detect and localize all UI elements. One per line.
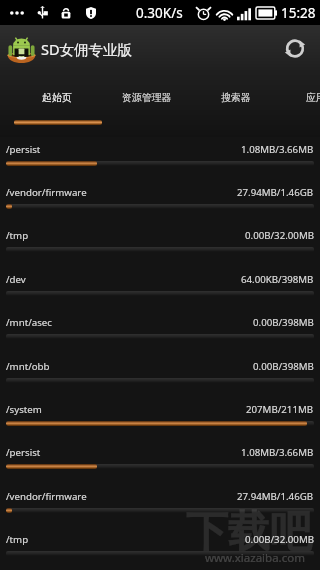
button[interactable]: /system (0, 398, 320, 441)
staticText: 0.30K/s (136, 4, 183, 22)
staticText: 0.00B/32.00MB (245, 533, 314, 546)
staticText: /vendor/firmware (6, 490, 87, 503)
staticText: SD女佣专业版 (41, 39, 133, 59)
staticText: 207MB/211MB (246, 403, 314, 416)
staticText: 15:28 (281, 4, 316, 22)
button[interactable]: /vendor/firmware (0, 485, 320, 528)
button[interactable]: /tmp (0, 528, 320, 570)
button[interactable]: /mnt/asec (0, 311, 320, 354)
button[interactable]: 应用管理 (281, 72, 320, 137)
button[interactable]: /vendor/firmware (0, 181, 320, 224)
staticText: 1.08MB/3.66MB (241, 446, 314, 459)
staticText: 0.00B/32.00MB (245, 229, 314, 242)
staticText: 应用管理 (306, 91, 320, 103)
staticText: /mnt/obb (6, 360, 50, 373)
button[interactable]: /dev (0, 268, 320, 311)
staticText: 下载吧 (186, 506, 312, 559)
button[interactable]: 搜索器 (191, 72, 281, 137)
button[interactable]: /mnt/obb (0, 355, 320, 398)
staticText: 起始页 (42, 91, 72, 103)
staticText: 搜索器 (221, 91, 251, 103)
staticText: /tmp (6, 229, 29, 242)
staticText: /system (6, 403, 42, 416)
staticText: www.xiazaiba.com (205, 550, 305, 566)
staticText: 0.00B/398MB (253, 316, 314, 329)
button[interactable]: /persist (0, 441, 320, 484)
button[interactable]: /persist (0, 138, 320, 181)
staticText: 27.94MB/1.46GB (237, 186, 314, 199)
staticText: 1.08MB/3.66MB (241, 143, 314, 156)
button[interactable]: Refresh (271, 25, 318, 72)
staticText: /tmp (6, 533, 29, 546)
button[interactable]: /tmp (0, 224, 320, 267)
staticText: /persist (6, 446, 41, 459)
staticText: /vendor/firmware (6, 186, 87, 199)
staticText: /persist (6, 143, 41, 156)
staticText: 0.00B/398MB (253, 360, 314, 373)
button[interactable]: 起始页 (12, 72, 102, 137)
staticText: 64.00KB/398MB (241, 273, 314, 286)
staticText: /dev (6, 273, 26, 286)
staticText: /mnt/asec (6, 316, 52, 329)
button[interactable]: 资源管理器 (102, 72, 192, 137)
staticText: 27.94MB/1.46GB (237, 490, 314, 503)
staticText: 资源管理器 (122, 91, 172, 103)
